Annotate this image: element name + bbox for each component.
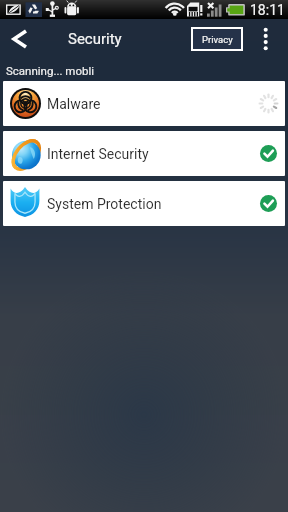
button[interactable]: Internet Security xyxy=(3,131,285,176)
button[interactable]: System Protection xyxy=(3,181,285,226)
staticText: Internet Security xyxy=(47,146,149,162)
staticText: Security xyxy=(68,30,122,48)
staticText: Scanning... mobli xyxy=(6,64,95,77)
staticText: Malware xyxy=(47,96,101,112)
button[interactable]: Back xyxy=(0,19,40,59)
button[interactable]: More options xyxy=(254,19,278,59)
staticText: 18:11 xyxy=(250,2,285,18)
staticText: System Protection xyxy=(47,196,162,212)
staticText: Privacy xyxy=(202,34,233,45)
button[interactable]: Privacy xyxy=(193,29,241,49)
button[interactable]: Malware xyxy=(3,81,285,126)
